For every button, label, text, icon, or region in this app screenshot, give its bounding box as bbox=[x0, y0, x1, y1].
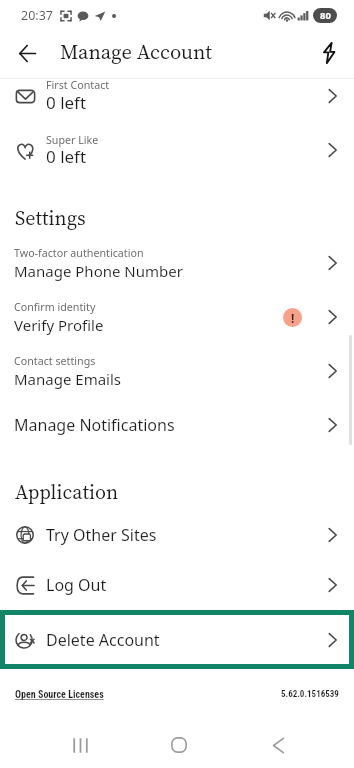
staticText: Verify Profile bbox=[14, 315, 104, 335]
staticText: 0 left bbox=[46, 145, 87, 168]
staticText: Contact settings bbox=[14, 354, 96, 369]
button[interactable]: Contact settings bbox=[0, 344, 354, 398]
button[interactable]: Back bbox=[10, 38, 44, 72]
button[interactable]: Boost bbox=[312, 38, 346, 72]
staticText: First Contact bbox=[46, 78, 110, 93]
staticText: Manage Phone Number bbox=[14, 261, 183, 281]
staticText: 80 bbox=[320, 9, 331, 22]
button[interactable]: Two-factor authentication bbox=[0, 236, 354, 290]
staticText: 0 left bbox=[46, 91, 87, 114]
staticText: Two-factor authentication bbox=[14, 246, 144, 261]
button[interactable]: First Contact bbox=[0, 78, 354, 123]
button[interactable]: Open Source Licenses bbox=[15, 689, 104, 701]
staticText: Manage Emails bbox=[14, 369, 121, 389]
staticText: Settings bbox=[15, 204, 86, 231]
button[interactable]: Confirm identity bbox=[0, 290, 354, 344]
button[interactable]: Log Out bbox=[0, 560, 354, 610]
button[interactable]: Super Like bbox=[0, 123, 354, 177]
staticText: Application bbox=[15, 478, 119, 505]
button[interactable]: Delete Account bbox=[0, 610, 354, 669]
staticText: 20:37 bbox=[21, 7, 53, 24]
staticText: ! bbox=[291, 310, 295, 326]
button[interactable]: Manage Notifications bbox=[0, 398, 354, 452]
staticText: Log Out bbox=[46, 574, 107, 596]
button[interactable]: Back bbox=[264, 730, 294, 760]
staticText: Super Like bbox=[46, 133, 99, 148]
button[interactable]: Recents bbox=[65, 730, 95, 760]
button[interactable]: Home bbox=[164, 730, 194, 760]
staticText: 5.62.0.1516539 bbox=[281, 689, 339, 700]
staticText: Delete Account bbox=[46, 629, 160, 651]
staticText: Manage Account bbox=[60, 38, 212, 66]
staticText: Try Other Sites bbox=[46, 524, 157, 546]
staticText: Manage Notifications bbox=[14, 414, 175, 436]
button[interactable]: Try Other Sites bbox=[0, 510, 354, 560]
staticText: Confirm identity bbox=[14, 300, 96, 315]
